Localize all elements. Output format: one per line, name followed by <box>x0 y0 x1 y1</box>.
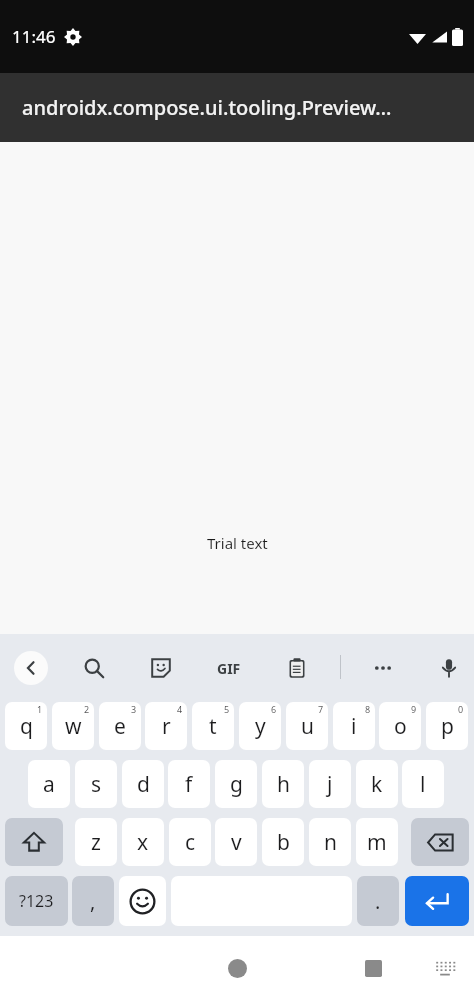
button[interactable]: Emoji <box>119 876 166 926</box>
staticText: s <box>91 770 102 799</box>
button[interactable]: ?123 <box>5 876 68 926</box>
button[interactable]: b <box>262 818 304 866</box>
staticText: 2 <box>84 703 90 715</box>
button[interactable]: . <box>357 876 399 926</box>
staticText: ?123 <box>19 890 54 912</box>
staticText: u <box>301 712 314 741</box>
button[interactable]: Switch keyboard <box>420 936 470 1000</box>
button[interactable]: w <box>52 702 94 750</box>
staticText: 3 <box>131 703 137 715</box>
button[interactable]: u <box>286 702 328 750</box>
button[interactable]: n <box>309 818 351 866</box>
button[interactable]: r <box>145 702 187 750</box>
button[interactable]: GIF <box>209 658 249 678</box>
button[interactable]: Enter <box>405 876 469 926</box>
button[interactable]: Shift <box>5 818 63 866</box>
staticText: 0 <box>458 703 464 715</box>
button[interactable]: j <box>309 760 351 808</box>
staticText: o <box>394 712 407 741</box>
button[interactable]: Voice input <box>431 650 467 686</box>
button[interactable]: i <box>333 702 375 750</box>
staticText: z <box>91 828 101 857</box>
button[interactable]: More options <box>365 650 401 686</box>
staticText: GIF <box>217 659 241 678</box>
staticText: 6 <box>271 703 277 715</box>
button[interactable]: Search <box>76 650 112 686</box>
staticText: i <box>351 712 357 741</box>
staticText: j <box>327 770 333 799</box>
button[interactable]: s <box>75 760 117 808</box>
button[interactable]: p <box>426 702 468 750</box>
button[interactable]: , <box>72 876 114 926</box>
button[interactable]: a <box>28 760 70 808</box>
button[interactable]: Backspace <box>411 818 469 866</box>
staticText: 11:46 <box>12 25 56 48</box>
staticText: androidx.compose.ui.tooling.Preview… <box>22 94 392 121</box>
button[interactable]: Back <box>14 651 48 685</box>
staticText: e <box>114 712 126 741</box>
staticText: g <box>230 770 243 799</box>
staticText: k <box>371 770 383 799</box>
button[interactable]: f <box>168 760 210 808</box>
button[interactable]: x <box>122 818 164 866</box>
staticText: 1 <box>37 703 43 715</box>
button[interactable]: d <box>122 760 164 808</box>
staticText: x <box>137 828 149 857</box>
staticText: v <box>231 828 242 857</box>
staticText: p <box>441 712 454 741</box>
button[interactable]: z <box>75 818 117 866</box>
staticText: Trial text <box>207 533 268 553</box>
staticText: , <box>90 888 96 915</box>
staticText: 5 <box>224 703 230 715</box>
staticText: 4 <box>177 703 183 715</box>
staticText: 9 <box>411 703 417 715</box>
staticText: a <box>43 770 55 799</box>
button[interactable]: e <box>99 702 141 750</box>
staticText: c <box>185 828 196 857</box>
button[interactable]: c <box>169 818 211 866</box>
staticText: q <box>20 712 33 741</box>
staticText: h <box>277 770 290 799</box>
staticText: m <box>367 828 387 857</box>
staticText: y <box>255 712 266 741</box>
button[interactable]: q <box>5 702 47 750</box>
button[interactable]: Stickers <box>143 650 179 686</box>
staticText: r <box>162 712 171 741</box>
button[interactable]: o <box>379 702 421 750</box>
button[interactable]: v <box>215 818 257 866</box>
staticText: l <box>420 770 426 799</box>
button[interactable]: m <box>356 818 398 866</box>
staticText: 8 <box>365 703 371 715</box>
staticText: f <box>185 770 193 799</box>
staticText: d <box>137 770 150 799</box>
staticText: . <box>375 888 381 915</box>
button[interactable]: y <box>239 702 281 750</box>
staticText: t <box>209 712 217 741</box>
button[interactable]: g <box>215 760 257 808</box>
button[interactable]: l <box>402 760 444 808</box>
staticText: w <box>65 712 82 741</box>
staticText: b <box>277 828 290 857</box>
staticText: n <box>324 828 337 857</box>
button[interactable]: Recents <box>343 936 403 1000</box>
button[interactable]: h <box>262 760 304 808</box>
button[interactable]: Home <box>207 938 267 998</box>
button[interactable]: Clipboard <box>279 650 315 686</box>
staticText: 7 <box>318 703 324 715</box>
button[interactable]: t <box>192 702 234 750</box>
button[interactable]: k <box>356 760 398 808</box>
